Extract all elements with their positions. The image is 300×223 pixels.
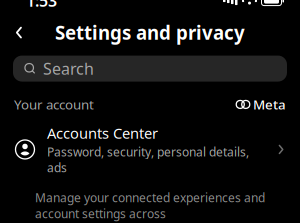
staticText: Password, security, personal details, ad… [47,144,249,176]
staticText: Accounts Center [47,123,158,143]
staticText: 1:53 [26,0,57,11]
staticText: Search [43,58,94,79]
staticText: Your account [14,96,94,113]
button[interactable]: Back [2,16,36,50]
staticText: Manage your connected experiences and ac… [35,190,265,221]
staticText: Meta [253,96,286,113]
staticText: Settings and privacy [55,20,245,45]
button[interactable]: Accounts Center [0,117,300,182]
button[interactable]: Search [13,56,287,82]
